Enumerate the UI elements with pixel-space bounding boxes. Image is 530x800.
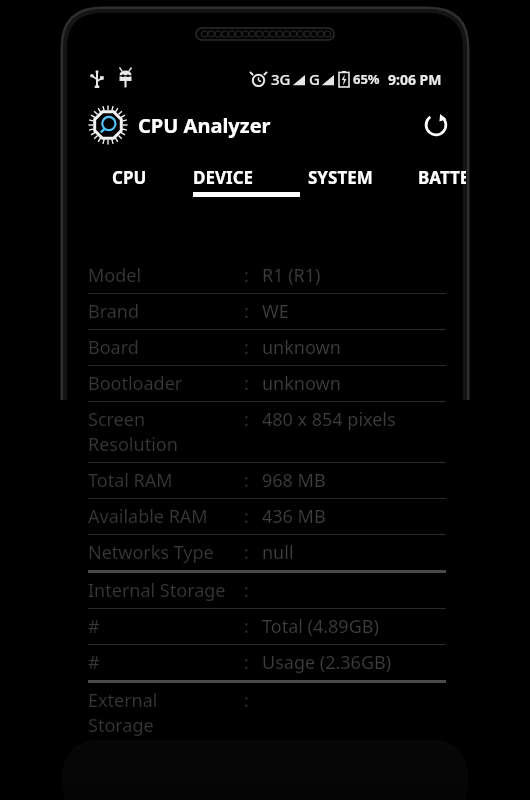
staticText: Screen bbox=[88, 407, 146, 432]
staticText: Usage (2.36GB) bbox=[262, 650, 392, 675]
staticText: unknown bbox=[262, 371, 341, 396]
button[interactable]: External bbox=[88, 683, 446, 743]
staticText: Total (4.89GB) bbox=[262, 614, 379, 639]
button[interactable]: Available RAM bbox=[88, 499, 446, 534]
staticText: : bbox=[244, 688, 249, 713]
staticText: BATTERY bbox=[418, 166, 466, 189]
staticText: Board bbox=[88, 335, 139, 360]
button[interactable]: Brand bbox=[88, 294, 446, 329]
staticText: CPU bbox=[112, 166, 147, 189]
staticText: # bbox=[88, 614, 100, 639]
staticText: Available RAM bbox=[88, 504, 208, 529]
staticText: Brand bbox=[88, 299, 140, 324]
staticText: Model bbox=[88, 263, 142, 288]
button[interactable]: Bootloader bbox=[88, 366, 446, 401]
staticText: WE bbox=[262, 299, 289, 324]
staticText: Internal Storage bbox=[88, 578, 226, 603]
staticText: Resolution bbox=[88, 432, 178, 457]
staticText: : bbox=[244, 335, 249, 360]
staticText: : bbox=[244, 504, 249, 529]
staticText: 65% bbox=[353, 70, 380, 88]
staticText: : bbox=[244, 407, 249, 432]
staticText: null bbox=[262, 540, 294, 565]
button[interactable]: # bbox=[88, 609, 446, 644]
button[interactable]: Refresh bbox=[414, 103, 458, 147]
staticText: 9:06 PM bbox=[388, 70, 442, 89]
button[interactable]: BATTERY bbox=[418, 160, 466, 206]
button[interactable]: Screen bbox=[88, 402, 446, 462]
staticText: 968 MB bbox=[262, 468, 326, 493]
staticText: 480 x 854 pixels bbox=[262, 407, 396, 432]
button[interactable]: # bbox=[88, 645, 446, 680]
staticText: unknown bbox=[262, 335, 341, 360]
button[interactable]: CPU bbox=[112, 160, 166, 206]
staticText: Networks Type bbox=[88, 540, 214, 565]
staticText: # bbox=[88, 650, 100, 675]
staticText: : bbox=[244, 540, 249, 565]
button[interactable]: SYSTEM bbox=[308, 160, 396, 206]
staticText: G bbox=[309, 69, 320, 89]
staticText: : bbox=[244, 299, 249, 324]
button[interactable]: Board bbox=[88, 330, 446, 365]
button[interactable]: Model bbox=[88, 258, 446, 293]
button[interactable]: Internal Storage bbox=[88, 573, 446, 608]
staticText: SYSTEM bbox=[308, 166, 373, 189]
staticText: : bbox=[244, 614, 249, 639]
staticText: Storage bbox=[88, 713, 154, 738]
staticText: Bootloader bbox=[88, 371, 183, 396]
staticText: : bbox=[244, 468, 249, 493]
staticText: R1 (R1) bbox=[262, 263, 321, 288]
staticText: : bbox=[244, 650, 249, 675]
staticText: : bbox=[244, 263, 249, 288]
button[interactable]: CPU Analyzer bbox=[88, 105, 271, 145]
staticText: : bbox=[244, 578, 249, 603]
button[interactable]: Total RAM bbox=[88, 463, 446, 498]
button[interactable]: DEVICE bbox=[193, 160, 300, 206]
staticText: 3G bbox=[271, 69, 291, 89]
button[interactable]: Networks Type bbox=[88, 535, 446, 570]
staticText: External bbox=[88, 688, 158, 713]
staticText: DEVICE bbox=[193, 166, 254, 189]
staticText: CPU Analyzer bbox=[138, 112, 271, 139]
staticText: Total RAM bbox=[88, 468, 173, 493]
staticText: 436 MB bbox=[262, 504, 326, 529]
staticText: : bbox=[244, 371, 249, 396]
